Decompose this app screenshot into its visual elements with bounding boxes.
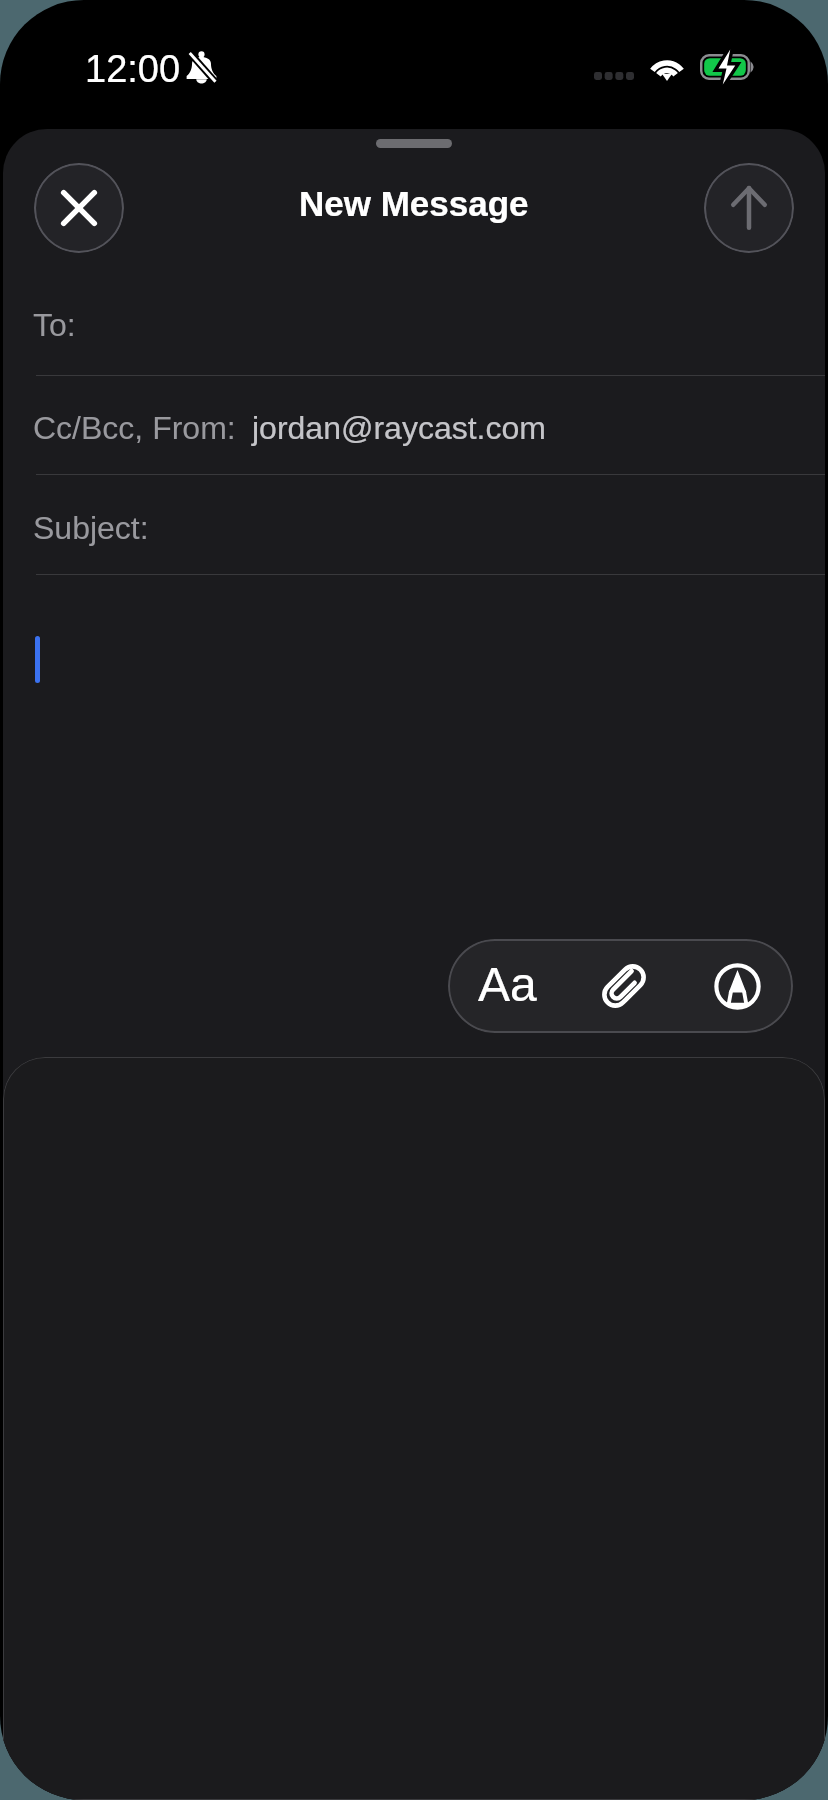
button[interactable]: Cc/Bcc, From: [3, 376, 825, 474]
staticText: Aa [478, 958, 537, 1012]
button[interactable]: Close [34, 163, 124, 253]
staticText: New Message [299, 184, 529, 223]
button[interactable]: Attach [566, 939, 682, 1033]
staticText: Cc/Bcc, From: [33, 410, 236, 446]
staticText: To: [33, 307, 76, 343]
button[interactable]: Markup [682, 939, 793, 1033]
button[interactable]: Send [704, 163, 794, 253]
staticText: 12:00 [85, 48, 181, 90]
button[interactable]: To: [3, 268, 825, 375]
staticText: jordan@raycast.com [252, 410, 546, 446]
staticText: Subject: [33, 510, 149, 546]
button[interactable]: Subject: [3, 475, 825, 574]
button[interactable]: Text format [448, 939, 566, 1033]
